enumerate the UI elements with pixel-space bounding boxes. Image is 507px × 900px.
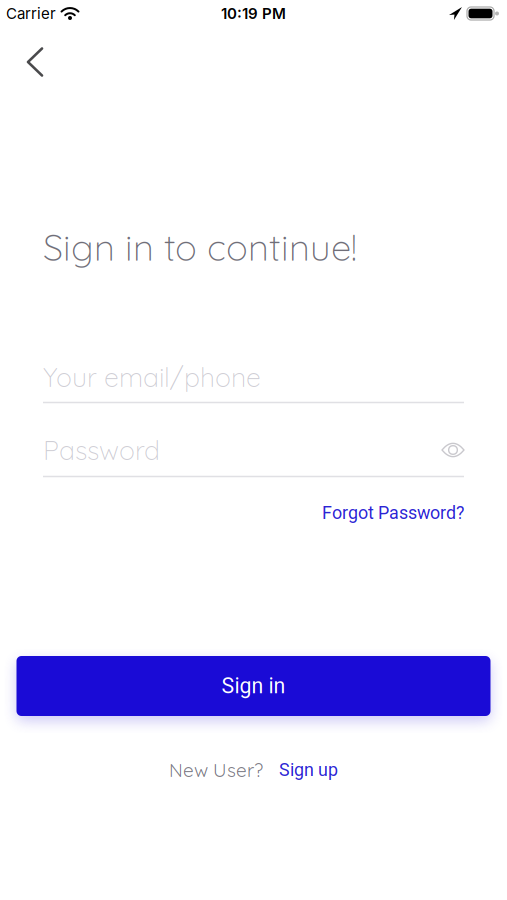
- staticText: Forgot Password?: [322, 502, 464, 523]
- button[interactable]: Back: [16, 36, 54, 87]
- button[interactable]: Sign up: [279, 759, 338, 780]
- button[interactable]: Sign in: [16, 656, 490, 716]
- textField[interactable]: Password: [0, 433, 507, 467]
- button[interactable]: Forgot Password?: [322, 502, 464, 523]
- staticText: Your email/phone: [43, 360, 261, 394]
- staticText: Carrier: [6, 4, 56, 23]
- staticText: Sign up: [279, 759, 338, 780]
- staticText: Sign in to continue!: [43, 224, 357, 270]
- staticText: New User?: [169, 758, 263, 782]
- textField[interactable]: Your email/phone: [0, 360, 507, 394]
- staticText: 10:19 PM: [221, 4, 286, 23]
- button[interactable]: Show password: [442, 443, 464, 457]
- staticText: Sign in: [221, 673, 285, 698]
- staticText: Password: [43, 433, 160, 467]
